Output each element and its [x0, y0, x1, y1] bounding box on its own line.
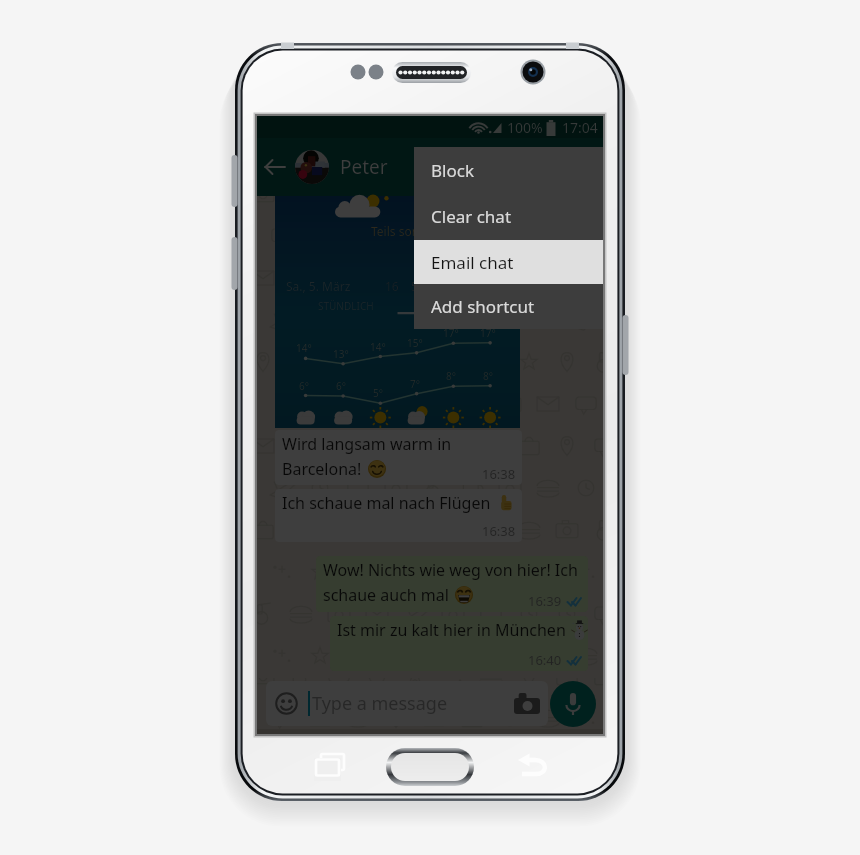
other: Camera: [514, 693, 540, 714]
button[interactable]: Weather screenshot: [275, 196, 520, 428]
staticText: schaue auch mal: [323, 584, 449, 606]
staticText: Wow! Nichts wie weg von hier! Ich: [323, 559, 578, 581]
staticText: Block: [431, 159, 474, 182]
staticText: Sa., 5. März: [286, 278, 351, 294]
staticText: Barcelona!: [282, 458, 362, 480]
button[interactable]: Email chat: [414, 240, 603, 284]
staticText: 8°: [446, 369, 456, 383]
staticText: 16:39: [528, 592, 562, 610]
staticText: Ich schaue mal nach Flügen: [282, 492, 491, 514]
staticText: 17:04: [562, 118, 598, 137]
button[interactable]: Block: [414, 147, 603, 193]
staticText: 5: [411, 278, 418, 294]
button[interactable]: Back: [260, 152, 290, 182]
staticText: Add shortcut: [431, 295, 535, 318]
button[interactable]: Clear chat: [414, 193, 603, 240]
staticText: 8°: [483, 369, 493, 383]
staticText: 5°: [373, 386, 383, 400]
staticText: Email chat: [431, 251, 514, 274]
staticText: 7°: [410, 377, 420, 391]
staticText: 13°: [333, 347, 349, 361]
staticText: 14°: [296, 341, 312, 355]
staticText: 17°: [443, 326, 459, 340]
button[interactable]: Ich schaue mal nach Flügen: [275, 489, 522, 542]
staticText: 15°: [407, 336, 423, 350]
staticText: 16:38: [482, 522, 516, 540]
staticText: 14°: [370, 340, 386, 354]
staticText: Wird langsam warm in: [282, 433, 452, 455]
button[interactable]: Record voice message: [550, 681, 596, 727]
button[interactable]: Emoji: [266, 681, 548, 726]
button[interactable]: Ist mir zu kalt hier in München: [330, 616, 588, 671]
staticText: Type a message: [312, 691, 448, 716]
staticText: Peter: [340, 154, 388, 180]
staticText: Ist mir zu kalt hier in München: [337, 619, 566, 641]
button[interactable]: Wow! Nichts wie weg von hier! Ich: [316, 556, 588, 612]
staticText: 16:40: [528, 651, 562, 669]
staticText: 16:38: [482, 465, 516, 483]
other: Emoji: [275, 692, 298, 715]
button[interactable]: Add shortcut: [414, 284, 603, 329]
staticText: Teils son: [371, 223, 420, 239]
staticText: 6°: [336, 379, 346, 393]
staticText: 16: [385, 278, 399, 294]
staticText: 6°: [299, 379, 309, 393]
staticText: Clear chat: [431, 205, 512, 228]
staticText: 17°: [480, 326, 496, 340]
button[interactable]: Wird langsam warm in: [275, 430, 522, 485]
button[interactable]: Contact photo: [295, 150, 329, 184]
staticText: 100%: [507, 118, 543, 137]
staticText: STÜNDLICH: [318, 299, 374, 313]
